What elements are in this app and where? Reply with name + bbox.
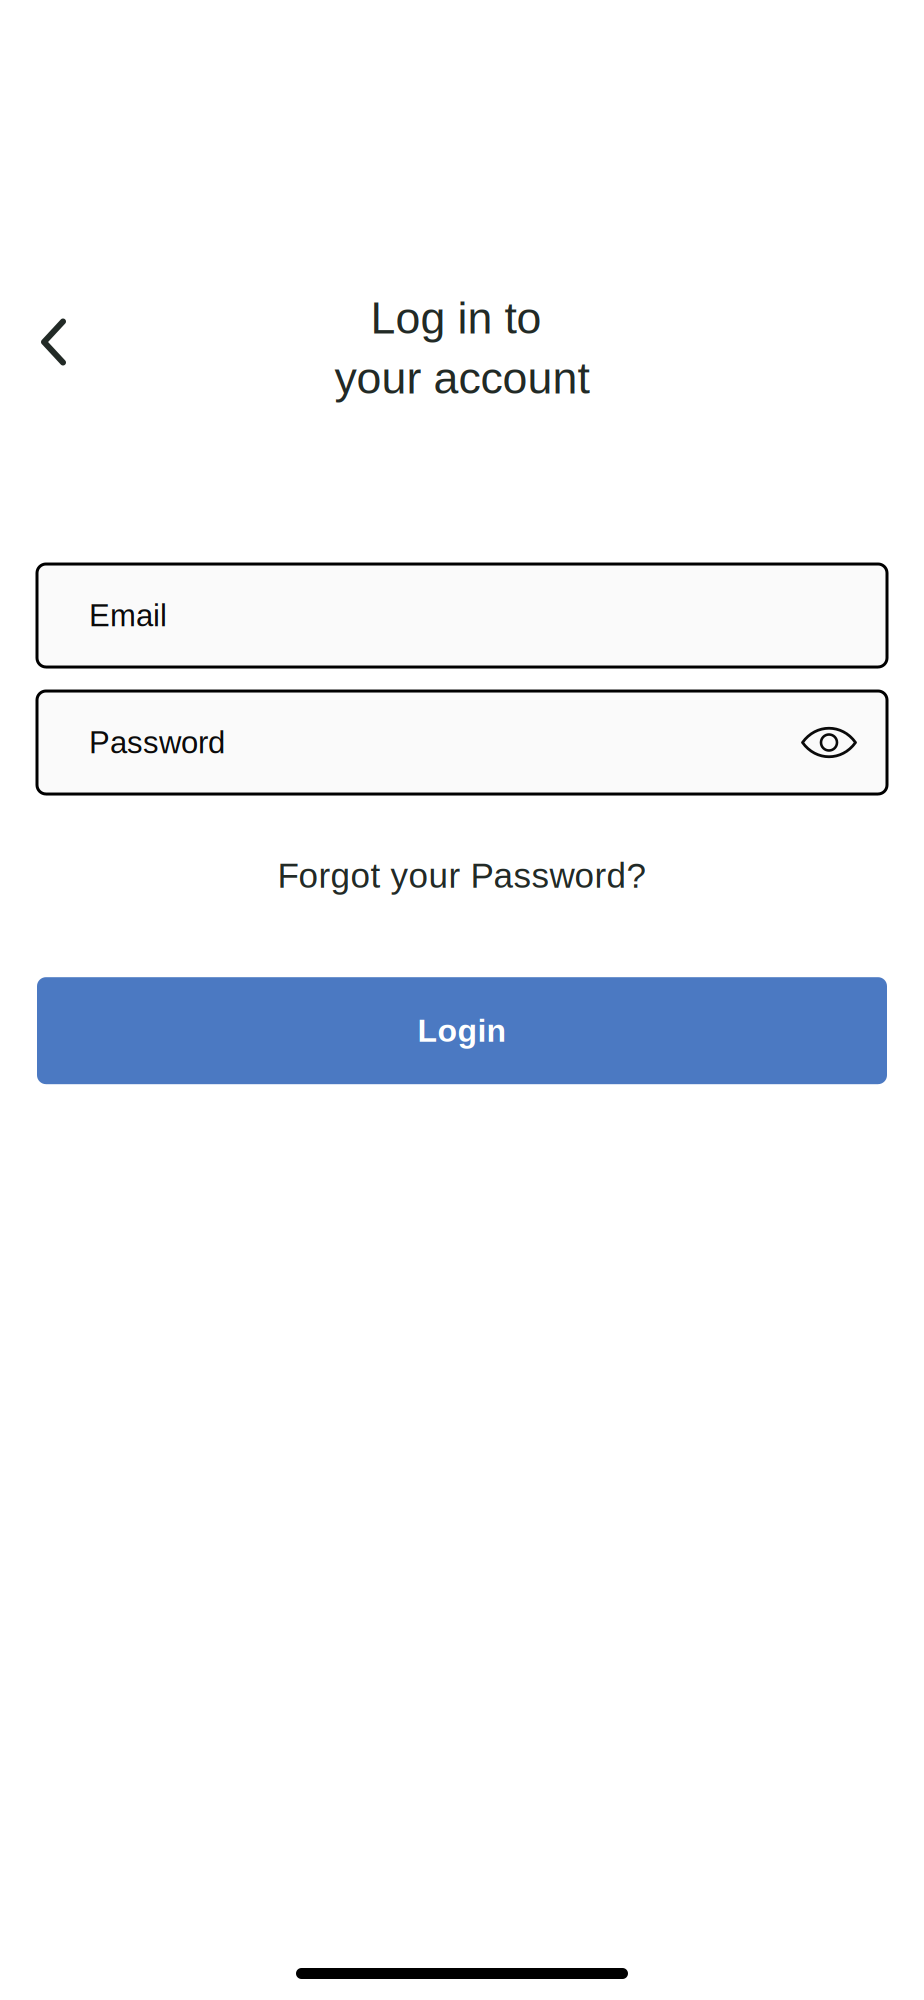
staticText: your account bbox=[334, 353, 589, 403]
button[interactable]: Forgot your Password? bbox=[37, 794, 887, 919]
button[interactable]: Password bbox=[37, 691, 887, 794]
button[interactable]: Show password bbox=[801, 726, 857, 758]
button[interactable]: Back bbox=[37, 310, 86, 385]
button[interactable]: Login bbox=[37, 977, 887, 1084]
staticText: Forgot your Password? bbox=[277, 856, 646, 895]
staticText: Password bbox=[89, 725, 225, 760]
staticText: Log in to bbox=[370, 293, 541, 343]
staticText: Login bbox=[417, 1013, 506, 1049]
button[interactable]: Email bbox=[37, 564, 887, 667]
staticText: Email bbox=[89, 598, 167, 633]
